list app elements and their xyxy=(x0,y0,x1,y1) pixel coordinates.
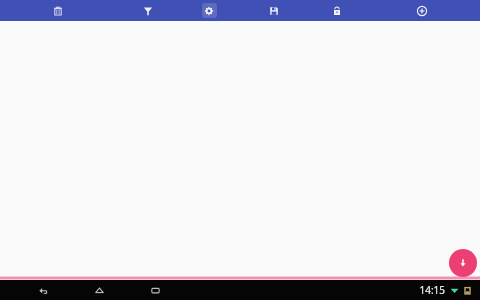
button[interactable]: Recent apps xyxy=(138,280,172,300)
button[interactable]: Add xyxy=(405,0,439,21)
button[interactable]: Lock xyxy=(320,0,354,21)
button[interactable]: Download xyxy=(449,249,477,277)
button[interactable]: Save xyxy=(257,0,291,21)
button[interactable]: Filter xyxy=(131,0,165,21)
button[interactable]: Delete xyxy=(41,0,75,21)
button[interactable]: Home xyxy=(82,280,116,300)
button[interactable]: Settings xyxy=(192,0,226,21)
button[interactable]: Back xyxy=(26,280,60,300)
staticText: 14:15 xyxy=(419,283,445,297)
